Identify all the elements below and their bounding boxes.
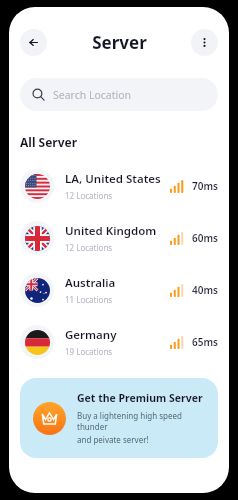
button[interactable]: Australia [9,264,229,316]
staticText: Server [92,31,147,54]
button[interactable]: Get the Premium Server [20,378,218,458]
staticText: 12 Locations [65,242,113,253]
button[interactable]: Search Location [20,78,218,111]
staticText: 70ms [192,179,218,193]
staticText: Germany [65,327,117,343]
staticText: 60ms [192,231,218,245]
button[interactable]: United Kingdom [9,212,229,264]
staticText: Buy a lightening high speed thunder [77,410,205,432]
staticText: Australia [65,275,116,291]
button[interactable]: More options [191,29,218,56]
button[interactable]: Germany [9,316,229,368]
staticText: 11 Locations [65,294,113,305]
staticText: 65ms [192,335,218,349]
button[interactable]: Back [20,29,47,56]
staticText: United Kingdom [65,223,157,239]
button[interactable]: LA, United States [9,160,229,212]
staticText: 40ms [192,283,218,297]
staticText: 19 Locations [65,346,113,357]
staticText: All Server [20,134,78,150]
staticText: LA, United States [65,171,161,187]
staticText: Get the Premium Server [77,391,203,405]
staticText: 12 Locations [65,190,113,201]
staticText: and peivate server! [77,434,149,445]
staticText: Search Location [53,88,132,102]
